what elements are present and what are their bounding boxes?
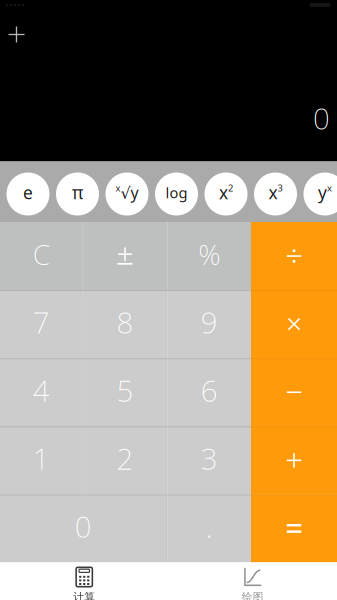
button[interactable]: x [204,172,247,215]
button[interactable]: 绘图 [168,562,337,600]
staticText: y [318,181,327,204]
staticText: 2 [228,182,233,194]
button[interactable]: Memory add [0,18,33,51]
staticText: 4 [33,371,50,410]
staticText: 7 [33,303,50,342]
staticText: 2 [116,439,133,478]
button[interactable]: 1 [0,426,83,494]
button[interactable]: 8 [84,290,166,358]
staticText: 5 [116,371,133,410]
button[interactable]: 7 [0,290,83,358]
staticText: % [198,235,220,273]
staticText: x [115,182,120,194]
button[interactable]: π [56,172,99,215]
button[interactable]: x [105,172,148,215]
button[interactable]: 9 [167,290,251,358]
staticText: x [219,181,228,204]
button[interactable]: 5 [84,358,166,426]
button[interactable] [251,222,337,290]
button[interactable]: 4 [0,358,83,426]
button[interactable]: C [0,222,83,290]
staticText: √y [120,182,138,203]
staticText: log [165,183,187,202]
button[interactable] [251,494,337,562]
button[interactable]: 2 [84,426,166,494]
button[interactable]: 3 [167,426,251,494]
staticText: x [327,182,332,194]
button[interactable]: % [167,222,251,290]
staticText: 6 [201,371,218,410]
staticText: . [206,507,213,546]
staticText: 0 [313,98,330,137]
button[interactable]: 计算 [0,562,168,600]
staticText: e [23,181,33,204]
button[interactable]: 0 [0,494,166,562]
staticText: 计算 [73,590,95,600]
staticText: π [72,181,83,204]
staticText: 绘图 [242,590,264,600]
staticText: 1 [33,439,50,478]
button[interactable] [251,426,337,494]
staticText: 8 [116,303,133,342]
staticText: 0 [75,507,92,546]
staticText: C [33,235,50,273]
staticText: 3 [277,182,282,194]
button[interactable]: 6 [167,358,251,426]
button[interactable] [84,222,166,290]
staticText: 3 [201,439,218,478]
staticText: 9 [201,303,218,342]
button[interactable] [251,290,337,358]
button[interactable]: e [6,172,49,215]
button[interactable]: x [254,172,297,215]
staticText: x [268,181,277,204]
button[interactable]: log [155,172,198,215]
button[interactable]: y [303,172,337,215]
button[interactable] [251,358,337,426]
